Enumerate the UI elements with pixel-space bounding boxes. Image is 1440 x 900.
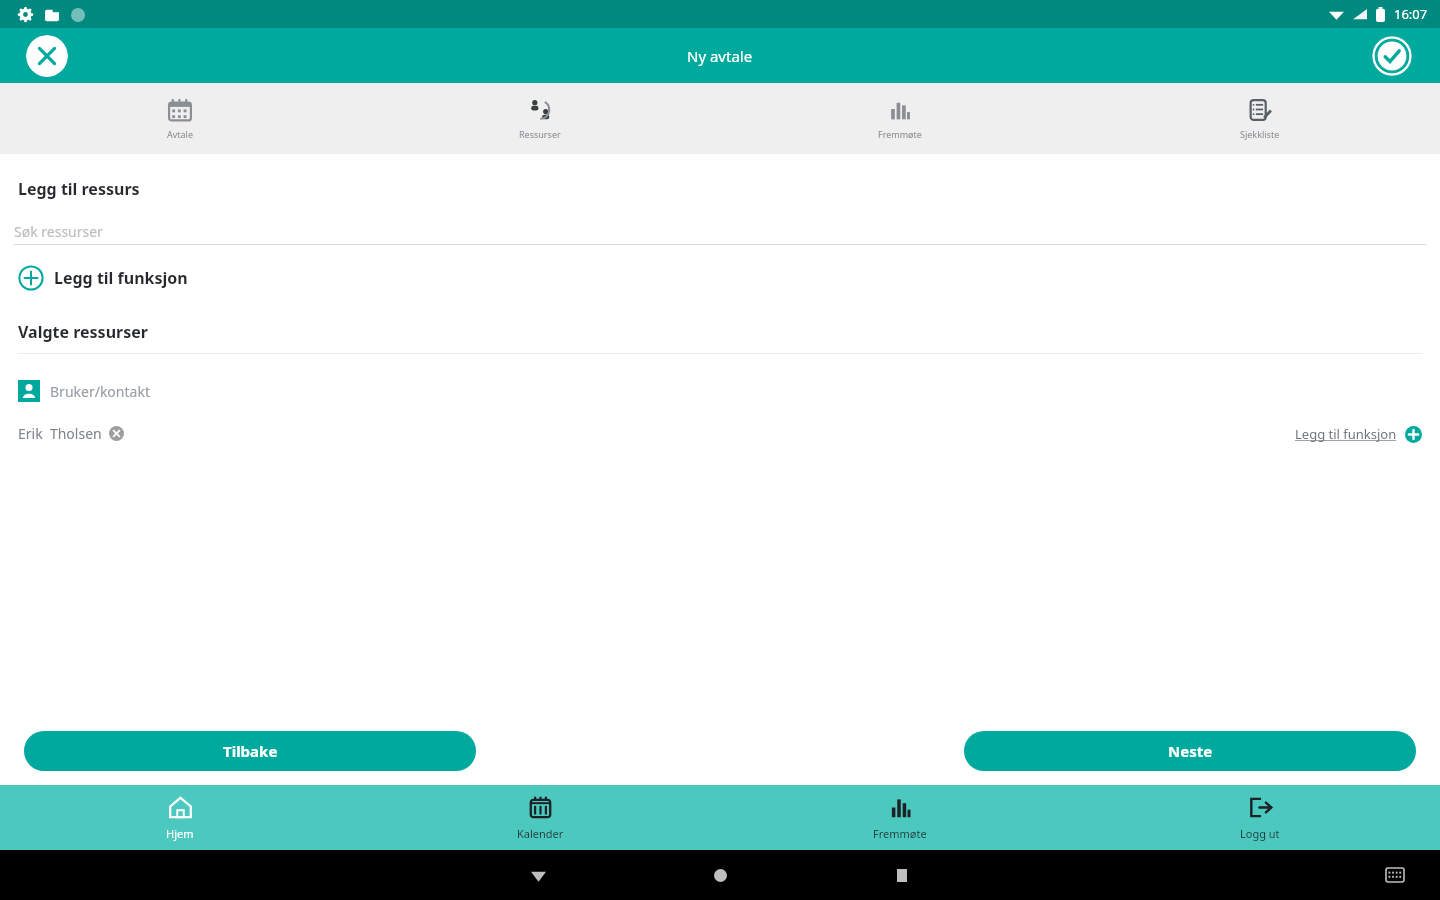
staticText: Legg til funksjon bbox=[1295, 425, 1397, 443]
staticText: Neste bbox=[1168, 741, 1213, 761]
other: Fjern Erik Tholsen bbox=[109, 426, 124, 441]
staticText: Bruker/kontakt bbox=[50, 382, 150, 401]
button[interactable]: Logg ut bbox=[1080, 785, 1440, 850]
staticText: Ressurser bbox=[519, 128, 561, 140]
button[interactable]: Ressurser bbox=[360, 83, 720, 154]
button[interactable]: Fremmøte bbox=[720, 785, 1080, 850]
staticText: Logg ut bbox=[1240, 826, 1280, 841]
staticText: Valgte ressurser bbox=[18, 321, 148, 343]
button[interactable]: Neste bbox=[964, 731, 1416, 771]
button[interactable]: Avtale bbox=[0, 83, 360, 154]
staticText: Erik Tholsen bbox=[18, 424, 102, 443]
button[interactable]: Hjem bbox=[697, 852, 743, 898]
button[interactable]: Legg til funksjon bbox=[18, 265, 1440, 291]
button[interactable]: Oversikt bbox=[879, 852, 925, 898]
staticText: Hjem bbox=[166, 826, 194, 841]
button[interactable]: Bruker/kontakt bbox=[18, 380, 1440, 402]
button[interactable]: Fremmøte bbox=[720, 83, 1080, 154]
button[interactable]: Søk ressurser bbox=[14, 218, 1426, 244]
button[interactable]: Tilbake bbox=[24, 731, 476, 771]
staticText: Ny avtale bbox=[687, 46, 753, 66]
staticText: Fremmøte bbox=[873, 826, 927, 841]
staticText: Legg til funksjon bbox=[54, 267, 188, 289]
button[interactable]: Lukk bbox=[26, 35, 68, 77]
button[interactable]: Tastatur bbox=[1378, 858, 1412, 892]
button[interactable]: Tilbake bbox=[515, 852, 561, 898]
button[interactable]: Legg til funksjon bbox=[1295, 425, 1422, 443]
button[interactable]: Bekreft bbox=[1372, 36, 1412, 76]
staticText: Legg til ressurs bbox=[18, 178, 140, 200]
staticText: Sjekkliste bbox=[1240, 128, 1280, 140]
button[interactable]: Kalender bbox=[360, 785, 720, 850]
staticText: Avtale bbox=[167, 128, 194, 140]
staticText: 16:07 bbox=[1394, 5, 1428, 23]
button[interactable]: Sjekkliste bbox=[1080, 83, 1440, 154]
button[interactable]: Hjem bbox=[0, 785, 360, 850]
staticText: Søk ressurser bbox=[14, 222, 103, 241]
staticText: Kalender bbox=[517, 826, 564, 841]
staticText: Fremmøte bbox=[878, 128, 922, 140]
button[interactable]: Erik Tholsen bbox=[18, 424, 124, 443]
staticText: Tilbake bbox=[223, 741, 278, 761]
